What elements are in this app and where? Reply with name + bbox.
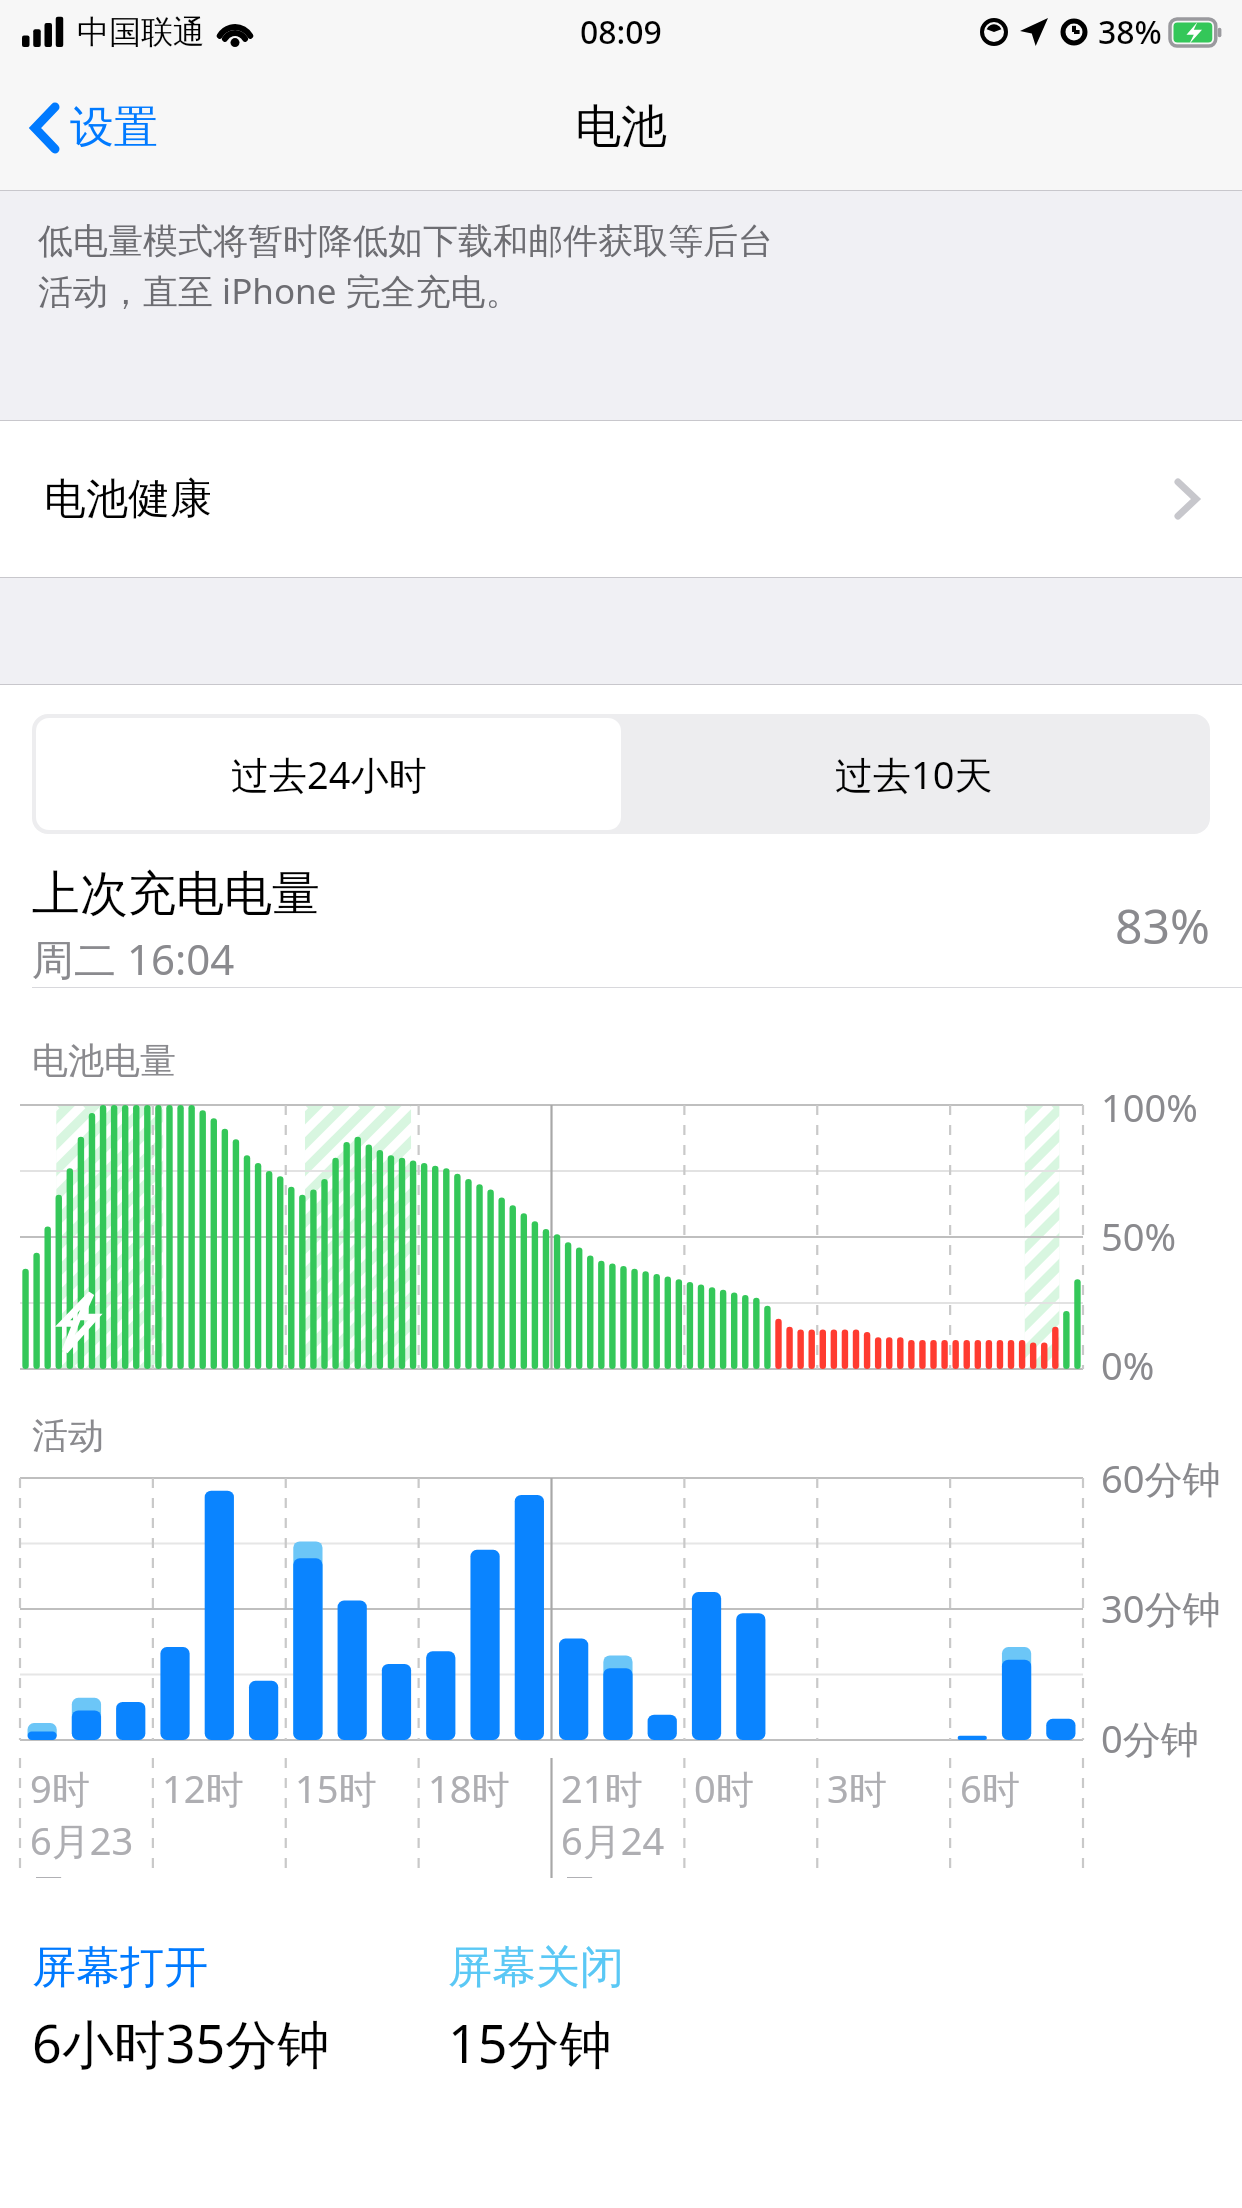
staticText: 屏幕关闭 [448, 1940, 624, 1995]
staticText: 设置 [70, 100, 158, 155]
staticText: 低电量模式将暂时降低如下载和邮件获取等后台 活动，直至 iPhone 完全充电。 [38, 219, 773, 315]
staticText: 12时 [162, 1762, 244, 1814]
staticText: 过去24小时 [231, 748, 427, 800]
staticText: 周二 16:04 [32, 930, 235, 987]
staticText: 15时 [295, 1762, 377, 1814]
staticText: 3时 [827, 1762, 887, 1814]
staticText: 屏幕打开 [32, 1940, 208, 1995]
staticText: 21时 [561, 1762, 643, 1814]
staticText: 0分钟 [1101, 1712, 1199, 1764]
button[interactable]: 电池健康 [0, 421, 1242, 577]
button[interactable]: 设置 [24, 92, 166, 163]
staticText: 活动 [32, 1413, 104, 1458]
staticText: 6月24日 [561, 1814, 684, 1878]
staticText: 38% [1098, 10, 1162, 54]
staticText: 上次充电电量 [32, 864, 320, 924]
staticText: 6小时35分钟 [32, 2007, 330, 2078]
staticText: 0% [1101, 1339, 1155, 1391]
staticText: 电池健康 [44, 473, 212, 526]
staticText: 83% [1115, 893, 1210, 958]
staticText: 过去10天 [835, 748, 993, 800]
staticText: 6月23日 [30, 1814, 152, 1878]
staticText: 9时 [30, 1762, 90, 1814]
staticText: 电池电量 [32, 1038, 176, 1083]
staticText: 18时 [428, 1762, 510, 1814]
button[interactable]: 过去24小时 [36, 718, 621, 830]
staticText: 08:09 [580, 10, 662, 54]
staticText: 15分钟 [448, 2007, 612, 2078]
staticText: 电池 [575, 98, 667, 156]
staticText: 100% [1101, 1081, 1198, 1133]
staticText: 0时 [694, 1762, 754, 1814]
staticText: 60分钟 [1101, 1452, 1221, 1504]
staticText: 中国联通 [77, 12, 205, 52]
button[interactable]: 过去10天 [621, 718, 1206, 830]
staticText: 30分钟 [1101, 1582, 1221, 1634]
staticText: 50% [1101, 1210, 1177, 1262]
staticText: 6时 [960, 1762, 1020, 1814]
